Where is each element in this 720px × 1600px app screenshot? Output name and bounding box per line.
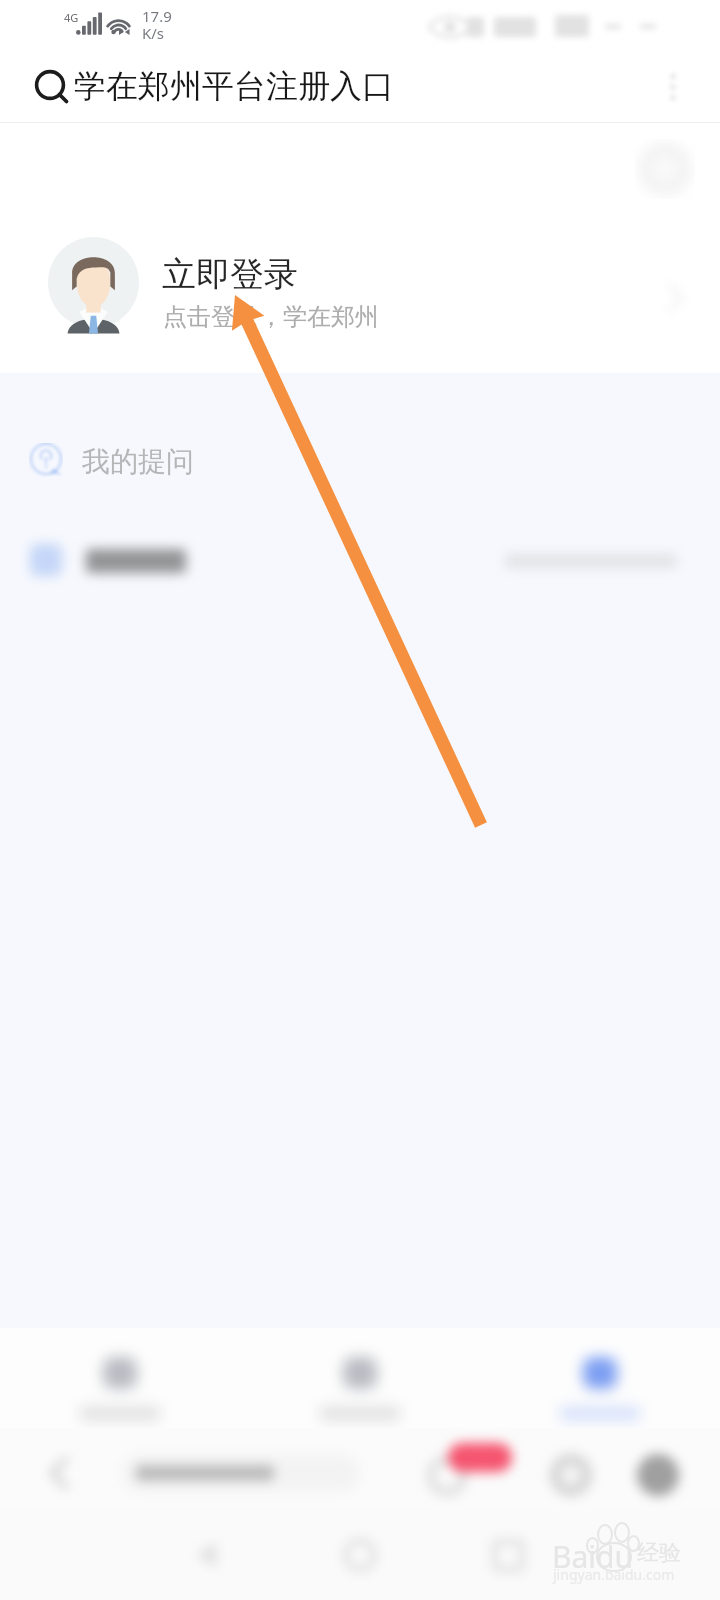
staticText: 17.9: [142, 6, 172, 26]
button[interactable]: Discover tab: [280, 1328, 440, 1428]
button[interactable]: Settings: [635, 139, 695, 199]
button[interactable]: Mine tab: [520, 1328, 680, 1428]
button[interactable]: Home tab: [40, 1328, 200, 1428]
staticText: jingyan.baidu.com: [553, 1565, 675, 1584]
staticText: 4G: [64, 10, 79, 25]
button[interactable]: [0, 510, 720, 610]
button[interactable]: Search: [22, 57, 78, 113]
staticText: 经验: [637, 1539, 681, 1567]
staticText: 立即登录: [162, 253, 298, 296]
staticText: K/s: [142, 23, 165, 43]
button[interactable]: 我的提问: [0, 410, 720, 510]
staticText: 学在郑州平台注册入口: [74, 66, 394, 106]
button[interactable]: 立即登录: [0, 229, 720, 359]
staticText: 点击登录，学在郑州: [163, 302, 379, 332]
staticText: 我的提问: [82, 444, 194, 479]
staticText: Baidu: [552, 1536, 634, 1577]
